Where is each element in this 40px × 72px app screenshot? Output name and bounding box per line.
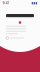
staticText: ▮▮▮ [31,1,37,5]
staticText: 9:41 [2,1,8,5]
